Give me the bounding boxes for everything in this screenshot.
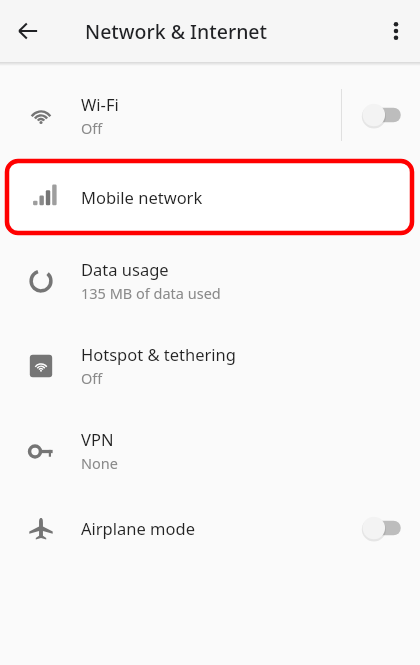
button[interactable]: Mobile network bbox=[7, 161, 412, 233]
staticText: Wi-Fi bbox=[81, 93, 119, 115]
button[interactable]: Airplane mode bbox=[0, 493, 420, 563]
button[interactable]: More options bbox=[372, 7, 420, 55]
staticText: Network & Internet bbox=[85, 18, 268, 45]
staticText: None bbox=[81, 453, 118, 473]
staticText: Hotspot & tethering bbox=[81, 343, 236, 365]
button[interactable]: Wi-Fi bbox=[0, 74, 420, 156]
staticText: Off bbox=[81, 368, 103, 388]
button[interactable]: Data usage bbox=[0, 238, 420, 323]
button[interactable]: Toggle bbox=[342, 85, 420, 145]
staticText: Mobile network bbox=[81, 186, 203, 208]
button[interactable]: Back bbox=[0, 3, 56, 59]
staticText: VPN bbox=[81, 428, 114, 450]
button[interactable]: Hotspot & tethering bbox=[0, 323, 420, 408]
staticText: Data usage bbox=[81, 258, 169, 280]
staticText: 135 MB of data used bbox=[81, 283, 221, 303]
staticText: Off bbox=[81, 118, 103, 138]
button[interactable]: VPN bbox=[0, 408, 420, 493]
staticText: Airplane mode bbox=[81, 517, 195, 539]
button[interactable]: Toggle bbox=[342, 498, 420, 558]
